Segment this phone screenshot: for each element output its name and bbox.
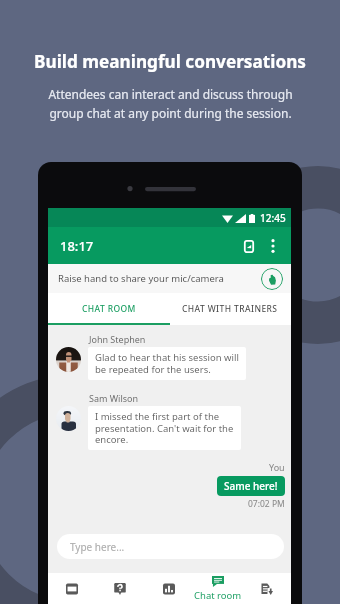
staticText: Sam Wilson [89,392,139,404]
staticText: You [269,461,285,473]
button[interactable]: Q&A [96,573,144,604]
button[interactable]: Cast screen [239,236,259,256]
button[interactable]: Raise hand to share your mic/camera [48,264,291,293]
staticText: I missed the first part of the presentat… [95,410,234,446]
staticText: 18:17 [60,237,94,255]
button[interactable]: Type here... [57,534,284,559]
button[interactable]: Polls [144,573,193,604]
staticText: Chat room [194,589,242,602]
staticText: CHAT ROOM [82,303,136,315]
button[interactable]: Files [242,573,291,604]
button[interactable]: Webinar [48,573,96,604]
staticText: 12:45 [260,211,286,225]
button[interactable]: More options [263,236,283,256]
button[interactable]: CHAT WITH TRAINERS [169,293,291,325]
staticText: Glad to hear that his session will be re… [95,351,239,376]
staticText: CHAT WITH TRAINERS [182,303,278,315]
button[interactable]: Glad to hear that his session will be re… [88,347,246,380]
button[interactable]: CHAT ROOM [48,293,169,325]
staticText: Build meaningful conversations [34,50,306,73]
staticText: 07:02 PM [248,498,285,510]
staticText: John Stephen [89,333,146,345]
button[interactable]: Same here! [217,476,285,496]
button[interactable]: I missed the first part of the presentat… [88,406,241,450]
staticText: Type here... [70,540,125,554]
staticText: Same here! [224,479,278,493]
staticText: Raise hand to share your mic/camera [58,272,224,285]
button[interactable]: Chat room [193,573,242,604]
staticText: Attendees can interact and discuss throu… [48,86,293,122]
